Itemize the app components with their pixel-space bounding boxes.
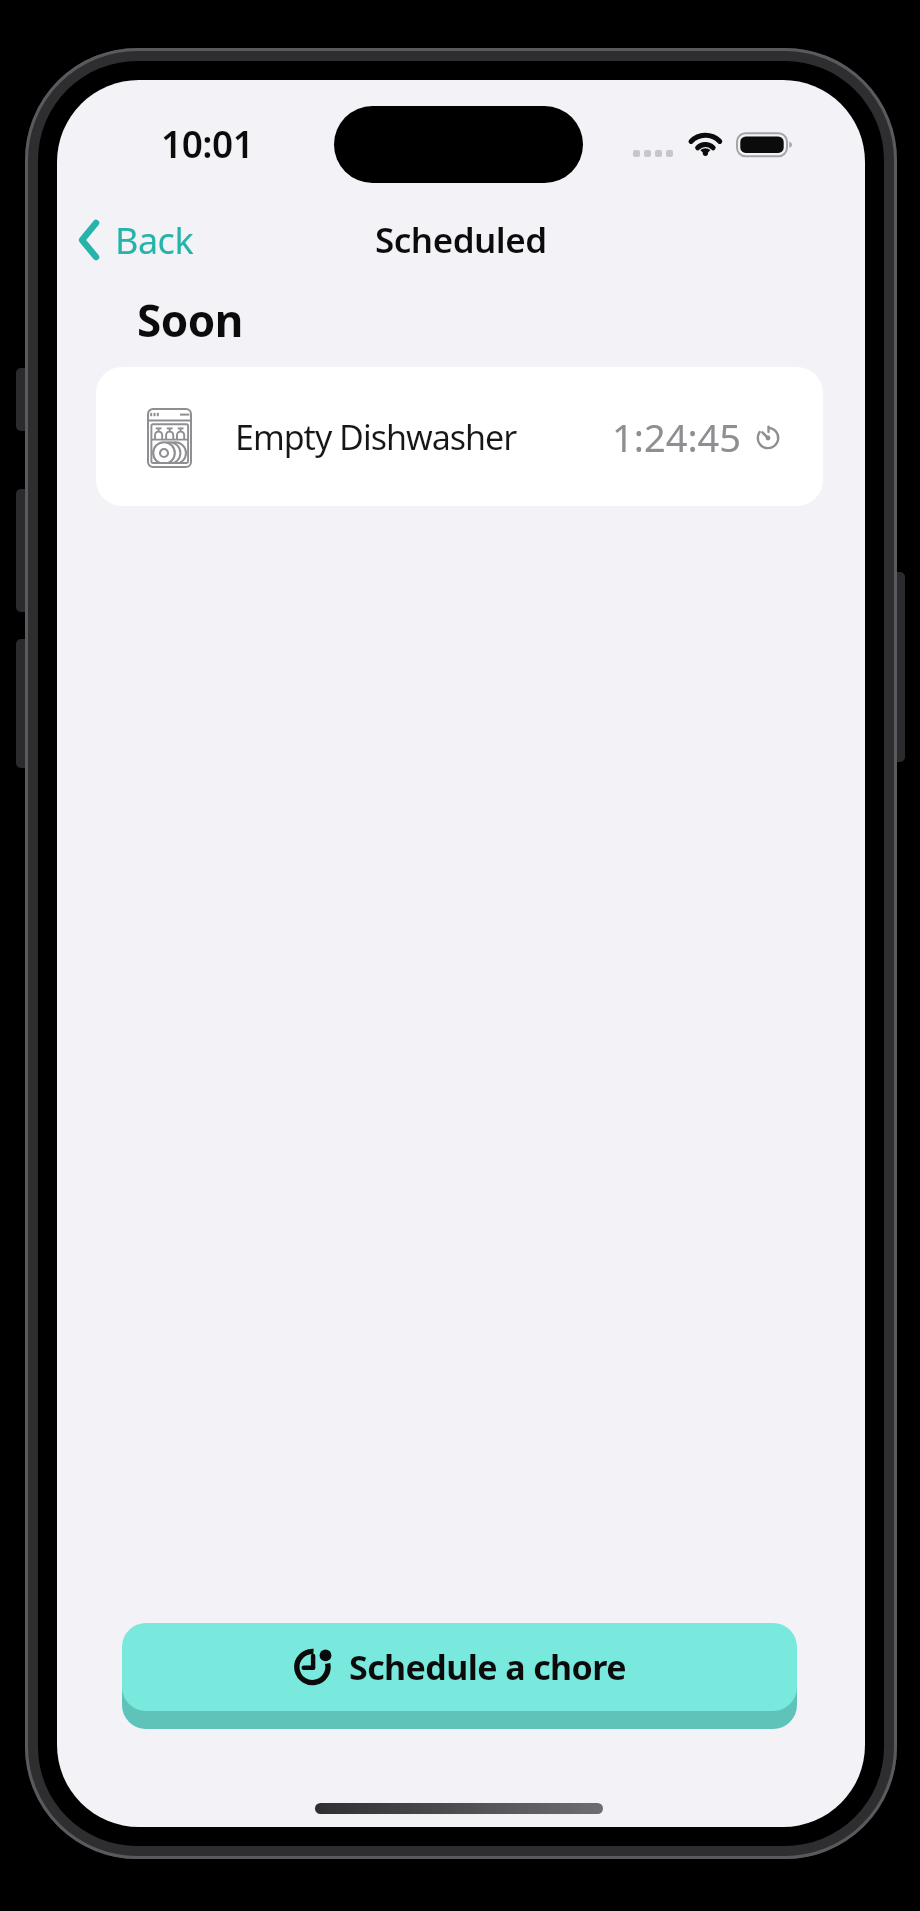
staticText: 10:01	[161, 118, 254, 168]
button[interactable]: Back	[67, 212, 202, 268]
staticText: Back	[115, 216, 194, 265]
staticText: Schedule a chore	[349, 1644, 626, 1690]
button[interactable]: Empty Dishwasher	[96, 367, 823, 506]
staticText: Scheduled	[375, 216, 547, 264]
button[interactable]: Schedule a chore	[122, 1623, 797, 1711]
staticText: Empty Dishwasher	[235, 414, 517, 460]
staticText: Soon	[137, 290, 243, 346]
staticText: 1:24:45	[612, 411, 742, 463]
